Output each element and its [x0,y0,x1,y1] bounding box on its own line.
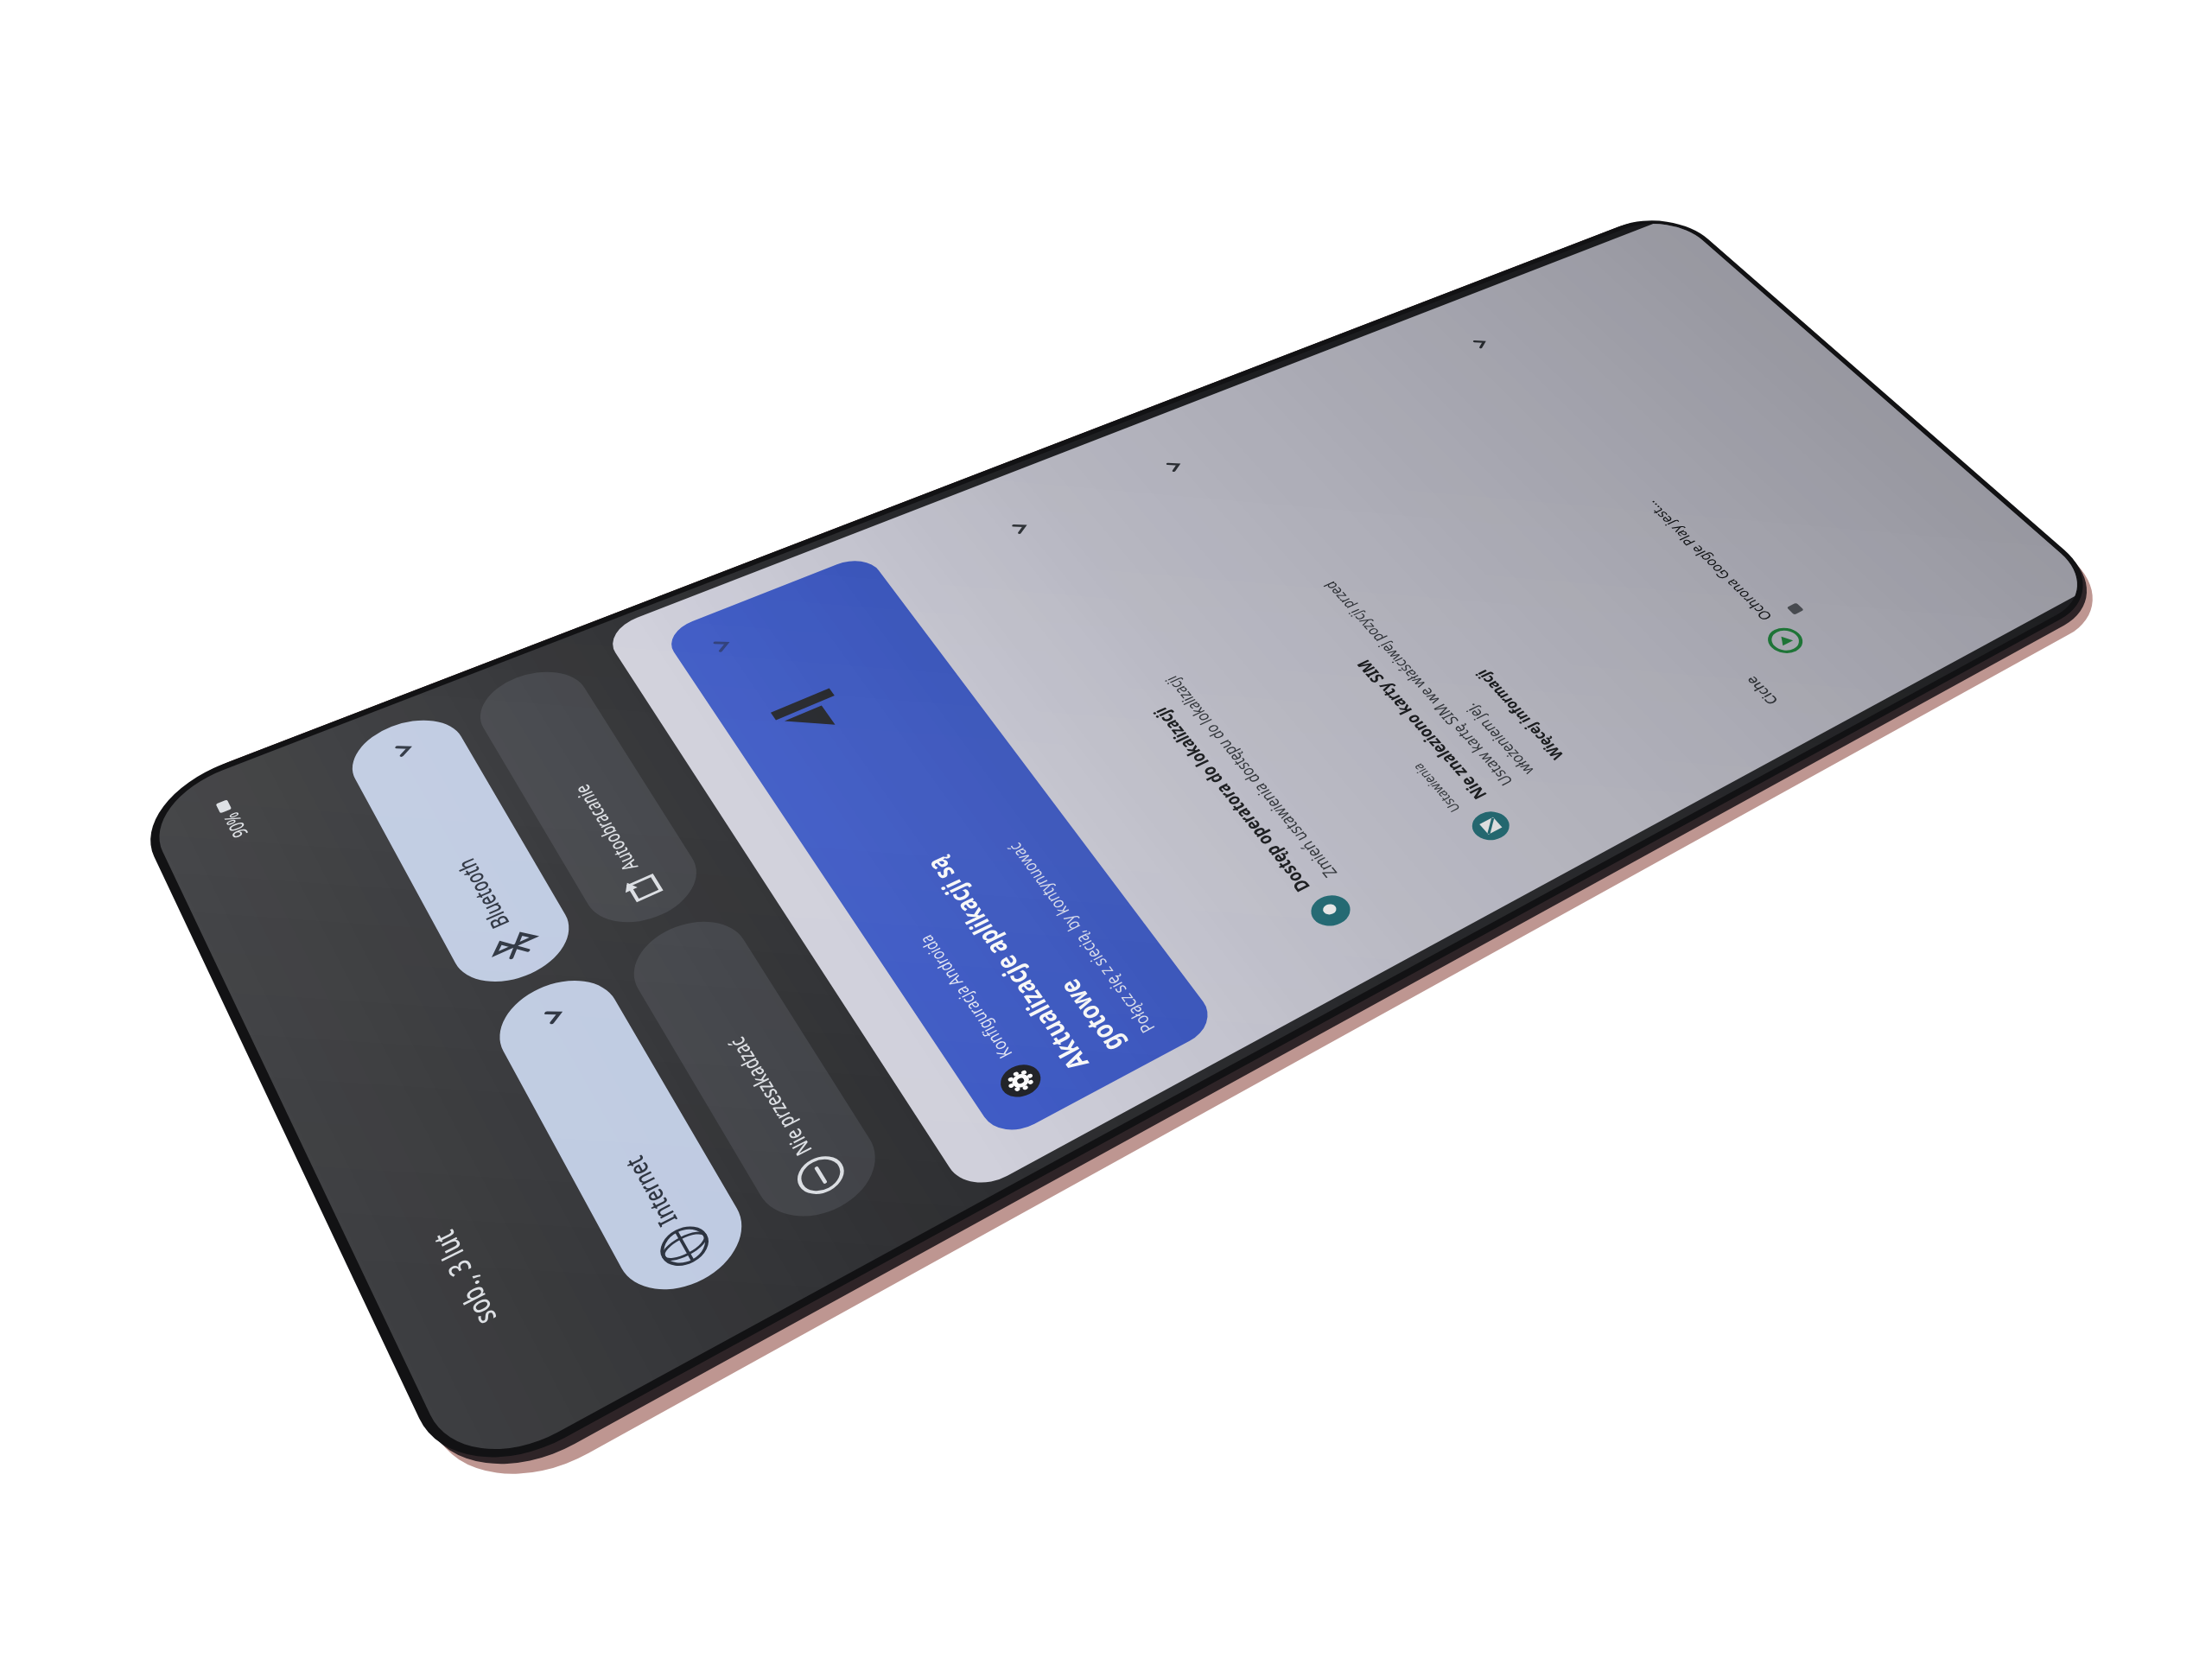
button[interactable]: Autoobracanie [473,670,716,945]
button[interactable]: Dostęp operatora do lokalizacji [933,466,1434,997]
button[interactable]: Internet [487,971,760,1310]
button[interactable]: Ochrona Google Play [1413,288,1910,726]
button[interactable]: Aktualizacje aplikacji są gotowe [661,553,1219,1141]
button[interactable]: Nie przeszkadzać [621,912,893,1236]
button[interactable]: Photo of a phone showing the Android not… [0,0,2212,1665]
button[interactable]: Bluetooth [345,719,588,1006]
button[interactable]: Nie znaleziono karty SIM [1084,387,1647,911]
